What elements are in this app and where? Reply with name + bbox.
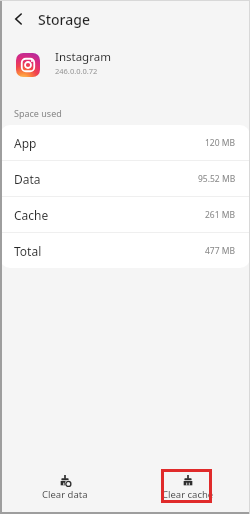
button[interactable]: Cache <box>0 197 250 232</box>
button[interactable] <box>0 0 38 38</box>
button[interactable]: Instagram <box>16 53 250 80</box>
staticText: Clear cache <box>162 488 214 501</box>
staticText: 95.52 MB <box>198 173 236 185</box>
staticText: Data <box>14 171 41 187</box>
button[interactable]: App <box>0 125 250 160</box>
staticText: 477 MB <box>205 245 236 257</box>
staticText: App <box>14 135 37 151</box>
button[interactable]: Data <box>0 161 250 196</box>
staticText: 246.0.0.0.72 <box>55 66 98 76</box>
staticText: Clear data <box>42 488 88 501</box>
staticText: Total <box>14 243 42 259</box>
button[interactable]: Total <box>0 233 250 268</box>
staticText: 120 MB <box>205 137 236 149</box>
staticText: Storage <box>38 10 90 29</box>
button[interactable]: Clear cache <box>162 475 214 501</box>
staticText: Space used <box>14 107 62 119</box>
staticText: Cache <box>14 207 49 223</box>
button[interactable]: Clear data <box>42 475 88 501</box>
staticText: 261 MB <box>205 209 236 221</box>
staticText: Instagram <box>55 49 111 65</box>
